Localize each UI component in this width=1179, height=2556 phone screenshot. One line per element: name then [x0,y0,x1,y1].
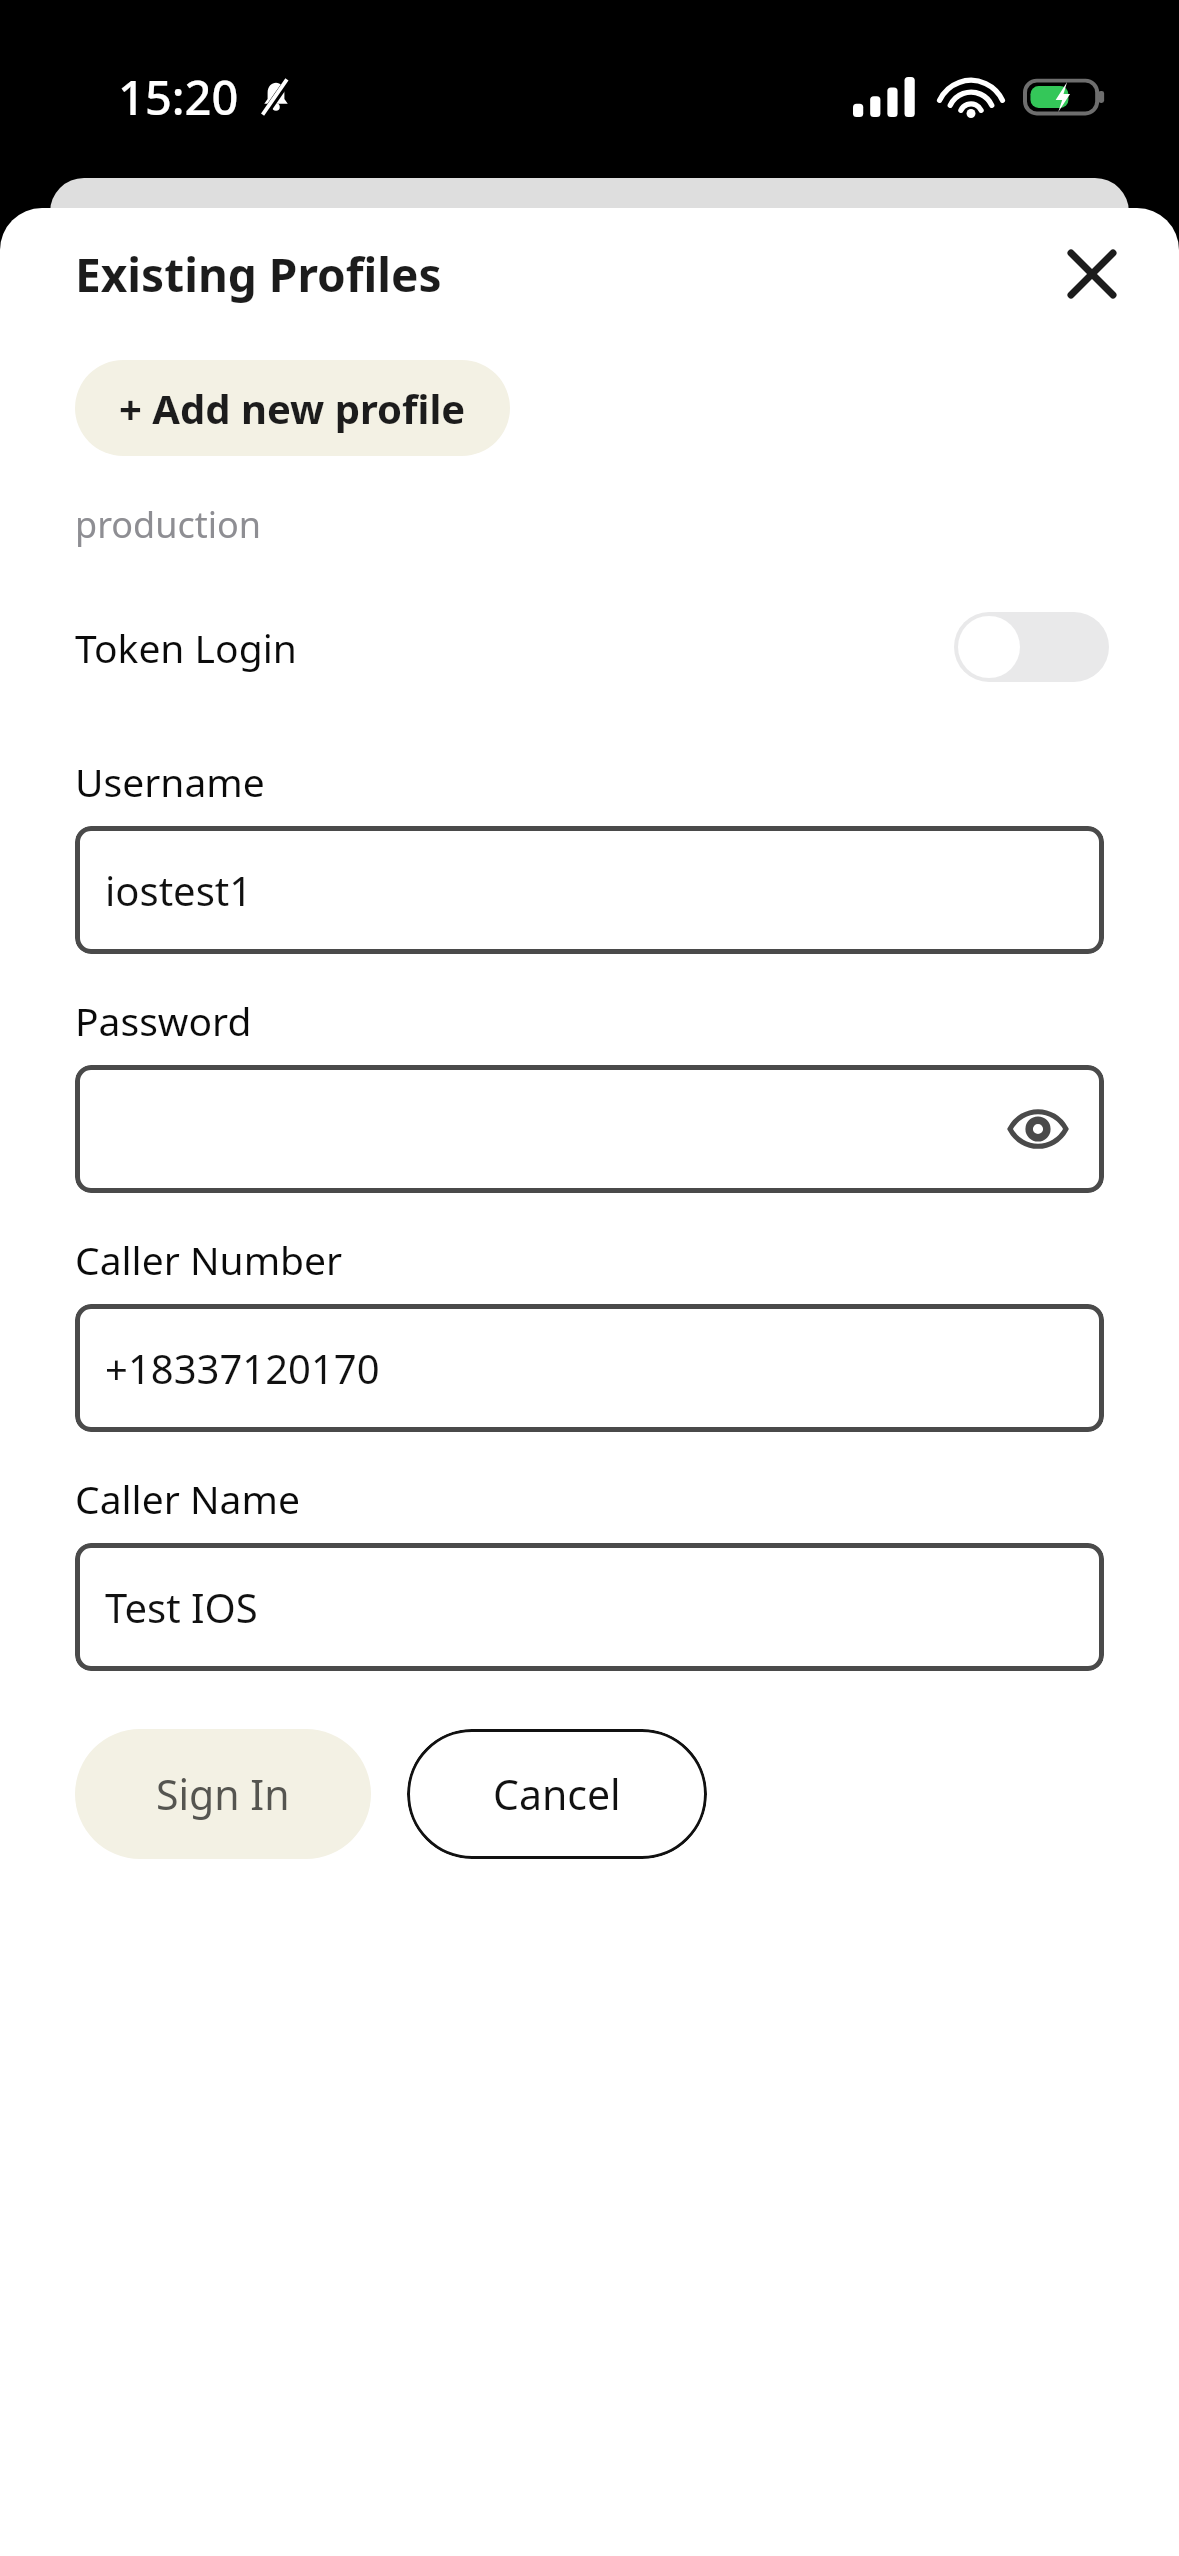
staticText: 15:20 [118,65,239,129]
staticText: Sign In [156,1766,290,1822]
button[interactable]: +18337120170 [75,1304,1104,1432]
button[interactable]: Token Login [0,601,1179,693]
staticText: iostest1 [105,863,253,917]
button[interactable]: Cancel [407,1729,707,1859]
staticText: Caller Name [75,1472,300,1525]
staticText: Cancel [493,1766,621,1822]
staticText: +18337120170 [105,1341,380,1395]
staticText: production [75,500,262,549]
staticText: Token Login [75,621,297,674]
staticText: Test IOS [105,1580,258,1634]
staticText: Caller Number [75,1233,343,1286]
button[interactable]: + Add new profile [75,360,510,456]
staticText: Existing Profiles [75,243,442,306]
staticText: + Add new profile [119,381,466,435]
button[interactable]: iostest1 [75,826,1104,954]
button[interactable]: Show password [1002,1093,1074,1165]
button[interactable]: Show password [75,1065,1104,1193]
staticText: Password [75,994,252,1047]
button[interactable]: Close [1049,231,1135,317]
button[interactable]: Sign In [75,1729,371,1859]
button[interactable]: Test IOS [75,1543,1104,1671]
staticText: Username [75,755,265,808]
